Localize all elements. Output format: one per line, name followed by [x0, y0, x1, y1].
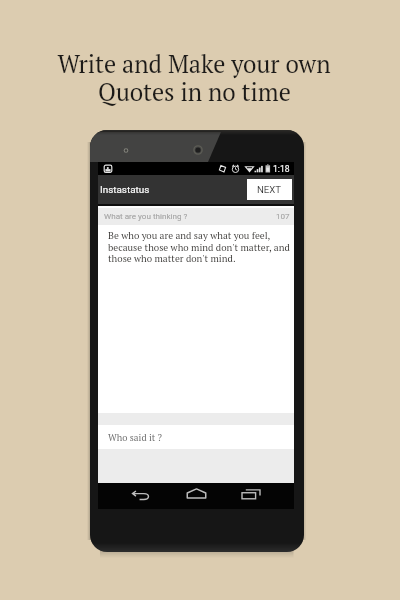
- button[interactable]: Recent apps: [237, 483, 265, 509]
- staticText: What are you thinking ?: [104, 211, 188, 220]
- staticText: Instastatus: [100, 184, 150, 196]
- staticText: 107: [276, 211, 290, 220]
- staticText: Write and Make your own: [57, 48, 331, 80]
- staticText: Who said it ?: [108, 431, 162, 443]
- staticText: 1:18: [273, 164, 290, 174]
- staticText: NEXT: [257, 184, 282, 195]
- button[interactable]: Back: [127, 483, 155, 509]
- button[interactable]: Home: [182, 483, 210, 509]
- staticText: Quotes in no time: [98, 76, 291, 108]
- staticText: Be who you are and say what you feel, be…: [108, 229, 291, 265]
- button[interactable]: NEXT: [247, 179, 292, 200]
